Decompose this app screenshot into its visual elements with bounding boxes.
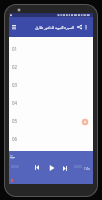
staticText: 03 — [12, 82, 18, 88]
button[interactable]: 01 — [9, 40, 93, 58]
button[interactable]: More options — [80, 21, 92, 33]
button[interactable]: Share — [73, 21, 85, 33]
button[interactable]: Navigation menu — [8, 21, 20, 33]
button[interactable]: 03 — [9, 76, 93, 94]
staticText: 06 — [12, 136, 18, 142]
staticText: 1.0x — [84, 167, 90, 171]
staticText: 05 — [12, 118, 18, 124]
button[interactable]: 06 — [9, 130, 93, 148]
staticText: 01 — [12, 46, 18, 52]
button[interactable]: Next track — [59, 163, 70, 174]
button[interactable]: Previous track — [31, 162, 42, 173]
staticText: 00:00 — [11, 165, 19, 169]
staticText: 04 — [12, 100, 18, 106]
button[interactable]: 02 — [9, 58, 93, 76]
button[interactable]: Play — [46, 162, 58, 174]
staticText: السيرة النبوية للدكتور طارق — [35, 25, 74, 30]
staticText: 02 — [12, 64, 18, 70]
staticText: 00:00 — [74, 165, 82, 169]
button[interactable]: 05 — [9, 112, 93, 130]
button[interactable]: 04 — [9, 94, 93, 112]
button[interactable]: Playback speed — [83, 165, 90, 172]
button[interactable]: Add — [81, 118, 89, 126]
